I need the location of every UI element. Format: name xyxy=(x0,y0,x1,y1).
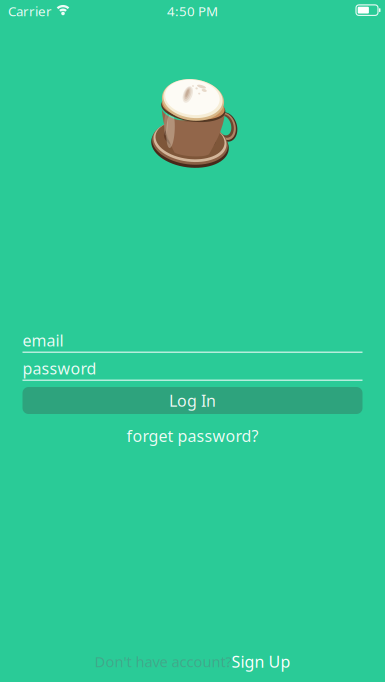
button[interactable]: Sign Up xyxy=(231,651,290,672)
staticText: Don't have account? xyxy=(94,652,231,671)
staticText: Sign Up xyxy=(231,651,290,672)
staticText: Carrier xyxy=(8,2,52,20)
staticText: password xyxy=(22,358,96,379)
staticText: forget password? xyxy=(126,425,258,446)
staticText: email xyxy=(22,330,63,351)
button[interactable]: Log In xyxy=(22,387,362,414)
button[interactable]: email xyxy=(22,331,362,353)
staticText: Log In xyxy=(169,390,216,411)
staticText: 4:50 PM xyxy=(167,2,218,20)
button[interactable]: forget password? xyxy=(22,414,362,446)
button[interactable]: password xyxy=(22,359,362,381)
